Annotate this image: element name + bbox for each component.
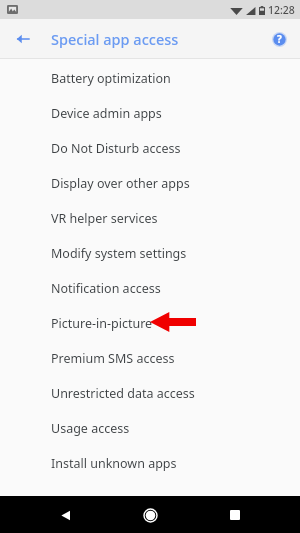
button[interactable]: Battery optimization <box>0 61 300 96</box>
button[interactable]: Modify system settings <box>0 236 300 271</box>
button[interactable]: Help <box>266 26 292 52</box>
staticText: Picture-in-picture <box>51 315 153 332</box>
button[interactable]: Navigate up <box>10 26 36 52</box>
button[interactable]: Install unknown apps <box>0 446 300 481</box>
staticText: Do Not Disturb access <box>51 140 181 157</box>
button[interactable]: Picture-in-picture <box>0 306 300 341</box>
staticText: VR helper services <box>51 210 158 227</box>
staticText: Notification access <box>51 280 161 297</box>
button[interactable]: Recent apps <box>222 502 248 528</box>
staticText: 12:28 <box>268 3 295 17</box>
staticText: Usage access <box>51 420 130 437</box>
button[interactable]: Notification access <box>0 271 300 306</box>
staticText: Display over other apps <box>51 175 190 192</box>
button[interactable]: VR helper services <box>0 201 300 236</box>
button[interactable]: Usage access <box>0 411 300 446</box>
staticText: Unrestricted data access <box>51 385 195 402</box>
button[interactable]: Do Not Disturb access <box>0 131 300 166</box>
button[interactable]: Home <box>136 501 164 529</box>
button[interactable]: Back <box>52 502 78 528</box>
staticText: ? <box>277 32 282 46</box>
staticText: Modify system settings <box>51 245 187 262</box>
staticText: Battery optimization <box>51 70 171 87</box>
staticText: Device admin apps <box>51 105 162 122</box>
button[interactable]: Device admin apps <box>0 96 300 131</box>
staticText: Premium SMS access <box>51 350 175 367</box>
button[interactable]: Unrestricted data access <box>0 376 300 411</box>
staticText: Install unknown apps <box>51 455 177 472</box>
staticText: Special app access <box>51 29 179 49</box>
button[interactable]: Display over other apps <box>0 166 300 201</box>
button[interactable]: Premium SMS access <box>0 341 300 376</box>
